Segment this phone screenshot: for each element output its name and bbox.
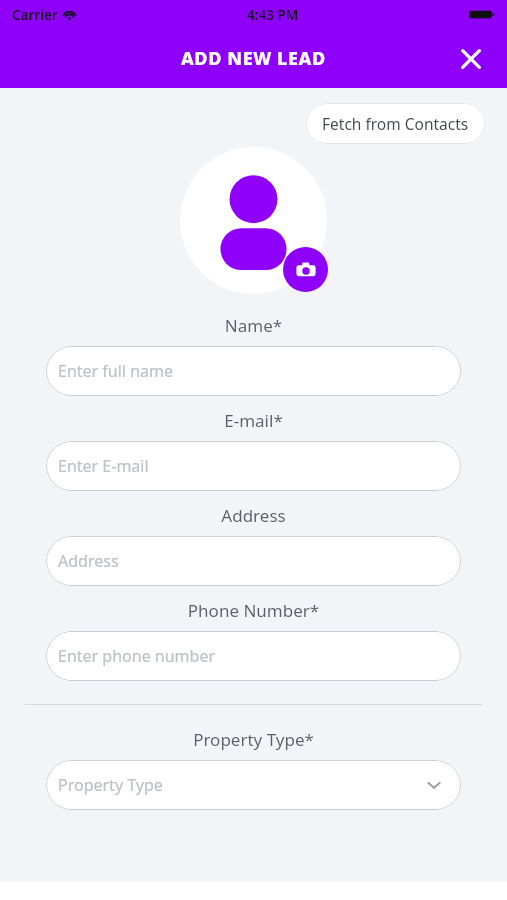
staticText: ADD NEW LEAD	[181, 46, 326, 71]
staticText: Property Type*	[0, 728, 507, 751]
button[interactable]	[180, 147, 327, 294]
staticText: Address	[0, 504, 507, 527]
button[interactable]: Enter E-mail	[46, 441, 461, 491]
staticText: Enter E-mail	[58, 455, 149, 477]
button[interactable]: Enter full name	[46, 346, 461, 396]
staticText: 4:43 PM	[247, 6, 299, 24]
button[interactable]: Property Type	[46, 760, 461, 810]
staticText: Phone Number*	[0, 599, 507, 622]
staticText: Fetch from Contacts	[322, 113, 469, 134]
staticText: Enter phone number	[58, 645, 216, 667]
staticText: Enter full name	[58, 360, 174, 382]
staticText: E-mail*	[0, 409, 507, 432]
button[interactable]: Enter phone number	[46, 631, 461, 681]
button[interactable]: Close	[453, 41, 489, 77]
staticText: Address	[58, 550, 119, 572]
staticText: Property Type	[58, 774, 163, 796]
button[interactable]: Address	[46, 536, 461, 586]
button[interactable]: Fetch from Contacts	[306, 103, 485, 144]
staticText: Carrier	[12, 6, 58, 24]
staticText: Name*	[0, 314, 507, 337]
button[interactable]: Change photo	[283, 247, 328, 292]
